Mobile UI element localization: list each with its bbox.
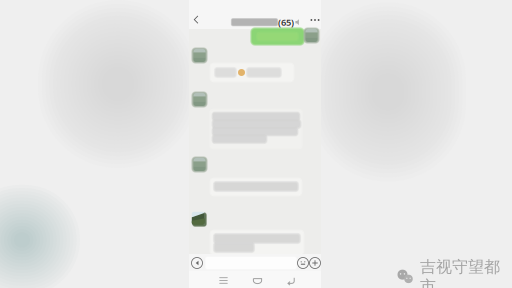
button[interactable]: Recent apps [218,275,229,286]
button[interactable]: More [306,10,324,30]
button[interactable]: Back [189,10,207,30]
button[interactable]: Emoji [297,257,308,268]
staticText: (65) [278,16,294,28]
button[interactable]: Home [252,275,263,286]
button[interactable]: More options [309,257,320,268]
button[interactable]: Voice message [191,257,202,268]
button[interactable]: Back [286,275,297,286]
staticText: 吉视守望都市 [420,257,500,288]
